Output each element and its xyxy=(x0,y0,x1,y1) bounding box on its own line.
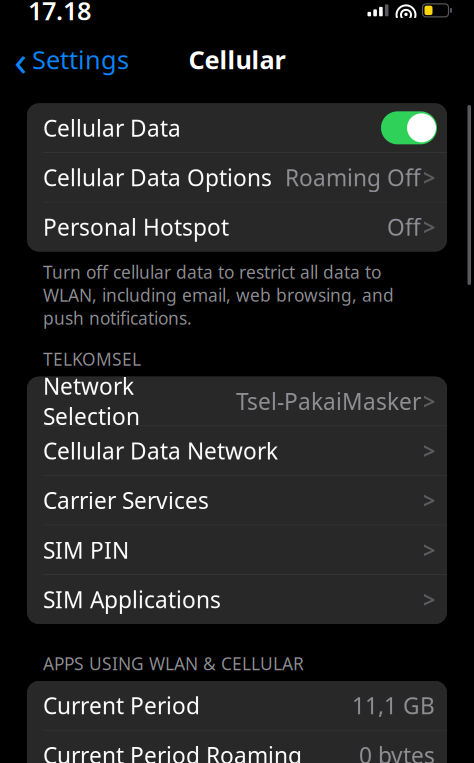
button[interactable]: Current Period Roaming xyxy=(27,731,447,763)
staticText: APPS USING WLAN & CELLULAR xyxy=(43,652,304,675)
staticText: Cellular Data Network xyxy=(43,436,278,466)
staticText: 17.18 xyxy=(28,0,91,27)
staticText: > xyxy=(422,584,435,615)
staticText: Current Period xyxy=(43,690,200,721)
staticText: Network Selection xyxy=(43,371,140,431)
staticText: Cellular xyxy=(188,42,285,76)
button[interactable]: Carrier Services xyxy=(27,476,447,525)
staticText: Current Period Roaming xyxy=(43,740,302,763)
staticText: Off xyxy=(387,212,421,242)
staticText: Settings xyxy=(32,42,129,76)
staticText: > xyxy=(422,212,435,242)
staticText: Turn off cellular data to restrict all d… xyxy=(43,261,394,330)
button[interactable]: Cellular Data Options xyxy=(27,153,447,202)
staticText: SIM Applications xyxy=(43,584,221,615)
staticText: > xyxy=(422,162,435,192)
staticText: > xyxy=(422,386,435,416)
staticText: Cellular Data Options xyxy=(43,162,272,192)
button[interactable]: Current Period xyxy=(27,681,447,730)
button[interactable]: ‹ xyxy=(0,37,139,81)
button[interactable]: Personal Hotspot xyxy=(27,203,447,252)
button[interactable]: Cellular Data Network xyxy=(27,426,447,475)
staticText: TELKOMSEL xyxy=(43,348,141,371)
staticText: > xyxy=(422,485,435,515)
button[interactable]: Network Selection xyxy=(27,377,447,426)
button[interactable]: SIM PIN xyxy=(27,525,447,574)
staticText: Personal Hotspot xyxy=(43,212,229,242)
staticText: 0 bytes xyxy=(359,740,435,763)
staticText: Carrier Services xyxy=(43,485,209,515)
staticText: Roaming Off xyxy=(285,162,421,192)
staticText: Tsel-PakaiMasker xyxy=(236,386,421,416)
staticText: ‹ xyxy=(14,31,27,88)
staticText: 11,1 GB xyxy=(352,690,435,721)
staticText: > xyxy=(422,535,435,565)
button[interactable]: SIM Applications xyxy=(27,575,447,624)
staticText: Cellular Data xyxy=(43,113,181,143)
staticText: SIM PIN xyxy=(43,535,129,565)
staticText: > xyxy=(422,436,435,466)
button[interactable]: Cellular Data toggle, on xyxy=(381,111,437,144)
